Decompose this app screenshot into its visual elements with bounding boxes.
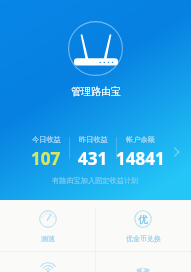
- staticText: 今日收益: [32, 135, 61, 144]
- button[interactable]: 昨日收益: [70, 135, 116, 167]
- other: WiFi设置: [39, 267, 57, 272]
- button[interactable]: 查看余额: [169, 144, 185, 160]
- staticText: 107: [31, 147, 61, 167]
- other: 优金币兑换: [134, 210, 152, 228]
- staticText: 优: [138, 213, 148, 226]
- button[interactable]: 测速: [0, 200, 95, 251]
- staticText: 14841: [116, 147, 165, 167]
- staticText: 管理路由宝: [71, 85, 121, 98]
- button[interactable]: 今日收益: [23, 135, 69, 167]
- staticText: 昨日收益: [79, 135, 108, 144]
- other: 家庭网络: [134, 267, 152, 272]
- button[interactable]: 管理路由宝: [68, 21, 123, 76]
- button[interactable]: 家庭网络: [95, 252, 191, 272]
- button[interactable]: 帐户余额: [117, 135, 163, 167]
- staticText: 优金币兑换: [126, 234, 161, 243]
- button[interactable]: 优金币兑换: [95, 200, 191, 251]
- staticText: 431: [78, 147, 108, 167]
- other: 测速: [39, 210, 57, 228]
- button[interactable]: WiFi设置: [0, 252, 95, 272]
- staticText: 测速: [41, 234, 55, 243]
- staticText: 帐户余额: [126, 135, 155, 144]
- staticText: 有路由宝加入固定收益计划: [52, 176, 139, 185]
